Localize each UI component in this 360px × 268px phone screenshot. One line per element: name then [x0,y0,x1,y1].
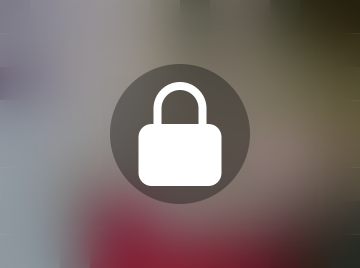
button[interactable]: Locked content [110,64,250,204]
